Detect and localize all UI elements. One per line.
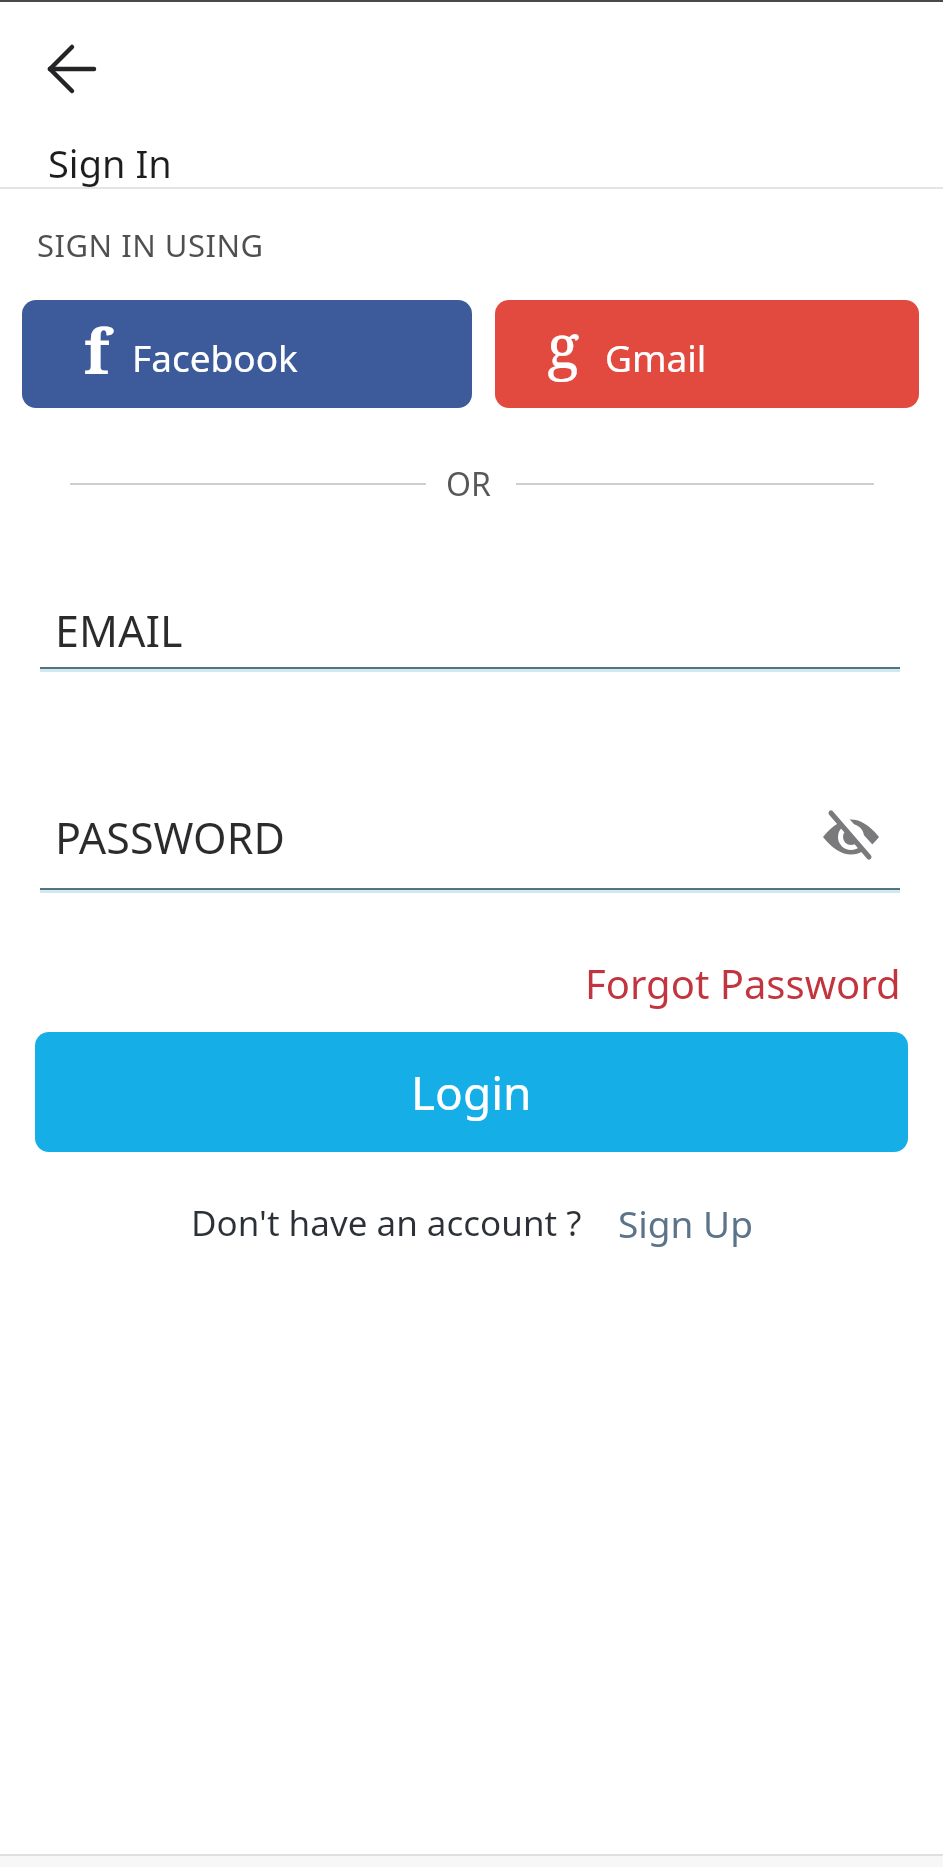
button[interactable] bbox=[820, 810, 882, 864]
staticText: Sign In bbox=[48, 137, 172, 189]
button[interactable]: Login bbox=[35, 1032, 908, 1152]
staticText: Login bbox=[411, 1061, 532, 1124]
button[interactable]: f bbox=[22, 300, 472, 408]
staticText: PASSWORD bbox=[55, 808, 285, 867]
button[interactable]: Sign Up bbox=[618, 1198, 753, 1248]
button[interactable] bbox=[46, 44, 96, 94]
button[interactable]: PASSWORD bbox=[40, 765, 900, 893]
staticText: Gmail bbox=[605, 332, 707, 382]
button[interactable]: Forgot Password bbox=[585, 956, 901, 1010]
button[interactable]: EMAIL bbox=[40, 558, 900, 670]
staticText: Facebook bbox=[132, 332, 298, 382]
button[interactable]: g bbox=[495, 300, 919, 408]
staticText: f bbox=[84, 308, 110, 392]
staticText: Don't have an account ? bbox=[191, 1199, 582, 1247]
staticText: g bbox=[547, 304, 580, 386]
staticText: EMAIL bbox=[55, 601, 183, 660]
staticText: OR bbox=[446, 462, 491, 506]
staticText: SIGN IN USING bbox=[37, 224, 264, 266]
